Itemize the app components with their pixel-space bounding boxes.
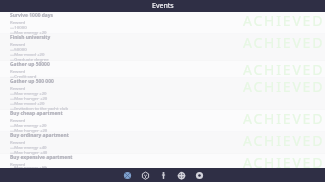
staticText: Reward xyxy=(10,161,26,167)
staticText: Buy ordinary apartment xyxy=(10,132,69,139)
staticText: —Max energy +20 xyxy=(10,90,47,96)
staticText: Gather up 500 000 xyxy=(10,78,54,85)
staticText: Reward xyxy=(10,139,26,145)
staticText: —Max energy +20 xyxy=(10,122,47,128)
button[interactable]: Buy expensive apartment xyxy=(0,154,325,168)
staticText: ACHIEVED xyxy=(243,60,325,79)
staticText: Buy cheap apartment xyxy=(10,110,63,117)
staticText: Reward xyxy=(10,85,26,91)
button[interactable]: Gather up 500 000 xyxy=(0,78,325,110)
staticText: Reward xyxy=(10,41,26,47)
staticText: —Max energy +40 xyxy=(10,144,47,150)
staticText: —Max hunger +40 xyxy=(10,149,48,155)
staticText: —50000 xyxy=(10,46,27,52)
staticText: —Invitation to the yacht club xyxy=(10,105,69,111)
button[interactable]: Achievements xyxy=(136,168,154,182)
staticText: Reward xyxy=(10,19,26,25)
button[interactable]: Character xyxy=(154,168,172,182)
staticText: Reward xyxy=(10,68,26,74)
staticText: Gather up 50000 xyxy=(10,61,50,68)
button[interactable]: Buy ordinary apartment xyxy=(0,132,325,154)
staticText: —Max hunger +20 xyxy=(10,95,48,101)
button[interactable]: Buy cheap apartment xyxy=(0,110,325,132)
button[interactable]: Survive 1000 days xyxy=(0,12,325,34)
staticText: Buy expensive apartment xyxy=(10,154,73,161)
staticText: —Max energy +20 xyxy=(10,29,47,35)
staticText: Events xyxy=(152,1,174,11)
staticText: ACHIEVED xyxy=(243,33,325,52)
button[interactable]: Events xyxy=(118,168,136,182)
staticText: —Max mood +20 xyxy=(10,100,45,106)
staticText: —Credit card xyxy=(10,73,37,79)
staticText: ACHIEVED xyxy=(243,11,325,30)
staticText: —Max hunger +20 xyxy=(10,127,48,133)
staticText: ACHIEVED xyxy=(243,153,325,172)
staticText: —10000 xyxy=(10,24,27,30)
staticText: ACHIEVED xyxy=(243,109,325,128)
button[interactable]: Settings xyxy=(190,168,208,182)
staticText: Survive 1000 days xyxy=(10,12,54,19)
staticText: —Graduate degree xyxy=(10,56,49,62)
button[interactable]: Health xyxy=(172,168,190,182)
staticText: —Max hunger +60 xyxy=(10,165,48,171)
staticText: ACHIEVED xyxy=(243,131,325,150)
button[interactable]: Finish university xyxy=(0,34,325,61)
button[interactable]: Gather up 50000 xyxy=(0,61,325,78)
staticText: —Max mood +20 xyxy=(10,51,45,57)
staticText: Reward xyxy=(10,117,26,123)
staticText: —Max energy +60 xyxy=(10,164,47,170)
staticText: Finish university xyxy=(10,34,51,41)
staticText: ACHIEVED xyxy=(243,77,325,96)
